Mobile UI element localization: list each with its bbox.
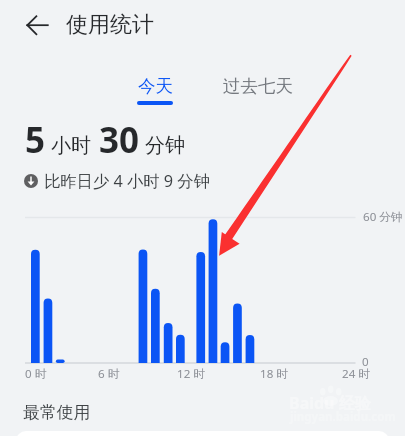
staticText: 6 时 [98,366,120,382]
staticText: 30 [99,116,140,164]
staticText: 0 时 [25,366,47,382]
staticText: 分钟 [145,133,185,158]
staticText: 18 时 [260,366,288,382]
staticText: 0 [362,354,369,370]
staticText: 比昨日少 4 小时 9 分钟 [44,170,210,192]
button[interactable]: Back [19,7,55,43]
staticText: 小时 [51,133,91,158]
staticText: 24 时 [342,366,370,382]
staticText: 5 [25,116,46,164]
staticText: 今天 [138,75,173,97]
staticText: 使用统计 [66,11,154,39]
staticText: 60 分钟 [363,209,403,225]
staticText: 最常使用 [23,402,91,423]
staticText: 12 时 [177,366,205,382]
button[interactable]: 过去七天 [223,75,293,97]
button[interactable]: 今天 [137,75,173,105]
